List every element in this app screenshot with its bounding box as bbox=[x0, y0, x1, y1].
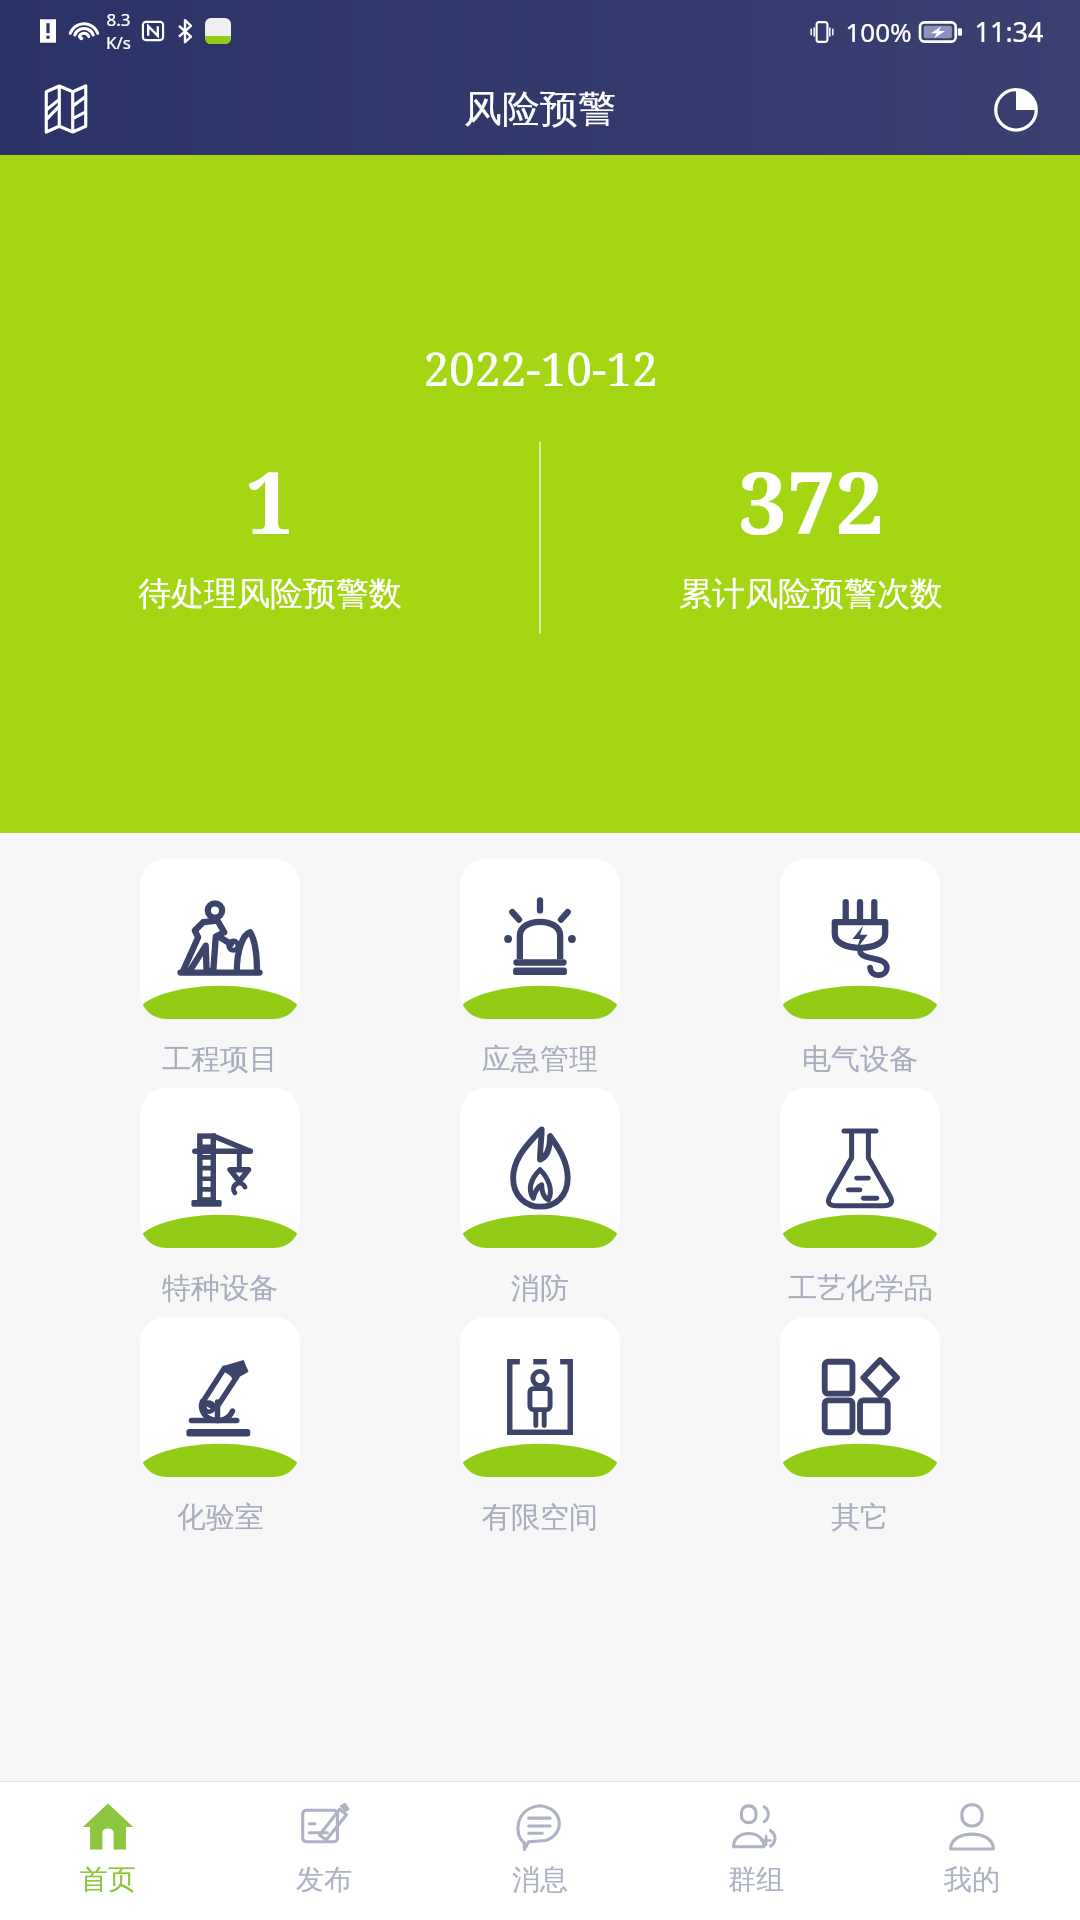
staticText: 特种设备 bbox=[162, 1270, 278, 1307]
staticText: 电气设备 bbox=[802, 1041, 918, 1078]
button[interactable]: 372 bbox=[541, 442, 1080, 615]
staticText: 2022-10-12 bbox=[423, 337, 658, 400]
staticText: 化验室 bbox=[177, 1499, 264, 1536]
button[interactable]: Statistics bbox=[982, 75, 1050, 143]
button[interactable]: 群组 bbox=[648, 1782, 864, 1920]
button[interactable]: 其它 bbox=[760, 1313, 960, 1540]
staticText: 1 bbox=[245, 442, 294, 559]
staticText: 工艺化学品 bbox=[788, 1270, 933, 1307]
staticText: 风险预警 bbox=[464, 85, 616, 133]
staticText: 消息 bbox=[512, 1862, 568, 1897]
staticText: K/s bbox=[106, 31, 131, 54]
staticText: 100% bbox=[845, 14, 912, 49]
button[interactable]: 发布 bbox=[216, 1782, 432, 1920]
staticText: 工程项目 bbox=[162, 1041, 278, 1078]
staticText: 首页 bbox=[80, 1862, 136, 1897]
staticText: 群组 bbox=[728, 1862, 784, 1897]
staticText: 11:34 bbox=[974, 13, 1044, 50]
staticText: 有限空间 bbox=[482, 1499, 598, 1536]
staticText: 应急管理 bbox=[482, 1041, 598, 1078]
button[interactable]: 应急管理 bbox=[440, 855, 640, 1082]
button[interactable]: 工程项目 bbox=[120, 855, 320, 1082]
button[interactable]: 我的 bbox=[864, 1782, 1080, 1920]
button[interactable]: 消防 bbox=[440, 1084, 640, 1311]
staticText: 消防 bbox=[511, 1270, 569, 1307]
button[interactable]: 工艺化学品 bbox=[760, 1084, 960, 1311]
button[interactable]: 首页 bbox=[0, 1782, 216, 1920]
button[interactable]: 消息 bbox=[432, 1782, 648, 1920]
button[interactable]: 化验室 bbox=[120, 1313, 320, 1540]
staticText: 累计风险预警次数 bbox=[679, 573, 943, 615]
staticText: 发布 bbox=[296, 1862, 352, 1897]
button[interactable]: 有限空间 bbox=[440, 1313, 640, 1540]
staticText: 我的 bbox=[944, 1862, 1000, 1897]
staticText: 372 bbox=[738, 442, 884, 559]
button[interactable]: 电气设备 bbox=[760, 855, 960, 1082]
staticText: 8.3 bbox=[106, 8, 131, 31]
button[interactable]: Map bbox=[32, 75, 100, 143]
button[interactable]: 特种设备 bbox=[120, 1084, 320, 1311]
button[interactable]: 1 bbox=[0, 442, 539, 615]
staticText: 待处理风险预警数 bbox=[138, 573, 402, 615]
staticText: 其它 bbox=[831, 1499, 889, 1536]
